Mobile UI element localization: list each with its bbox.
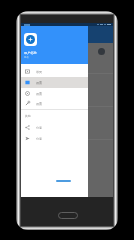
staticText: 设置	[36, 92, 43, 96]
button[interactable]: 首页	[21, 66, 88, 77]
button[interactable]: 分享	[21, 122, 88, 133]
button[interactable]: 设置	[21, 77, 88, 88]
staticText: 用户名称	[24, 51, 37, 55]
button[interactable]: 分享	[21, 133, 88, 144]
staticText: 签名	[24, 56, 29, 59]
staticText: 设置	[36, 102, 43, 106]
button[interactable]: 设置	[21, 88, 88, 99]
button[interactable]: Home	[58, 212, 78, 219]
button[interactable]: 设置	[21, 98, 88, 109]
staticText: 首页	[36, 70, 43, 74]
staticText: 设置	[36, 81, 43, 85]
staticText: 分享	[36, 126, 43, 130]
staticText: 分享	[36, 137, 43, 141]
staticText: 其他	[25, 114, 31, 118]
